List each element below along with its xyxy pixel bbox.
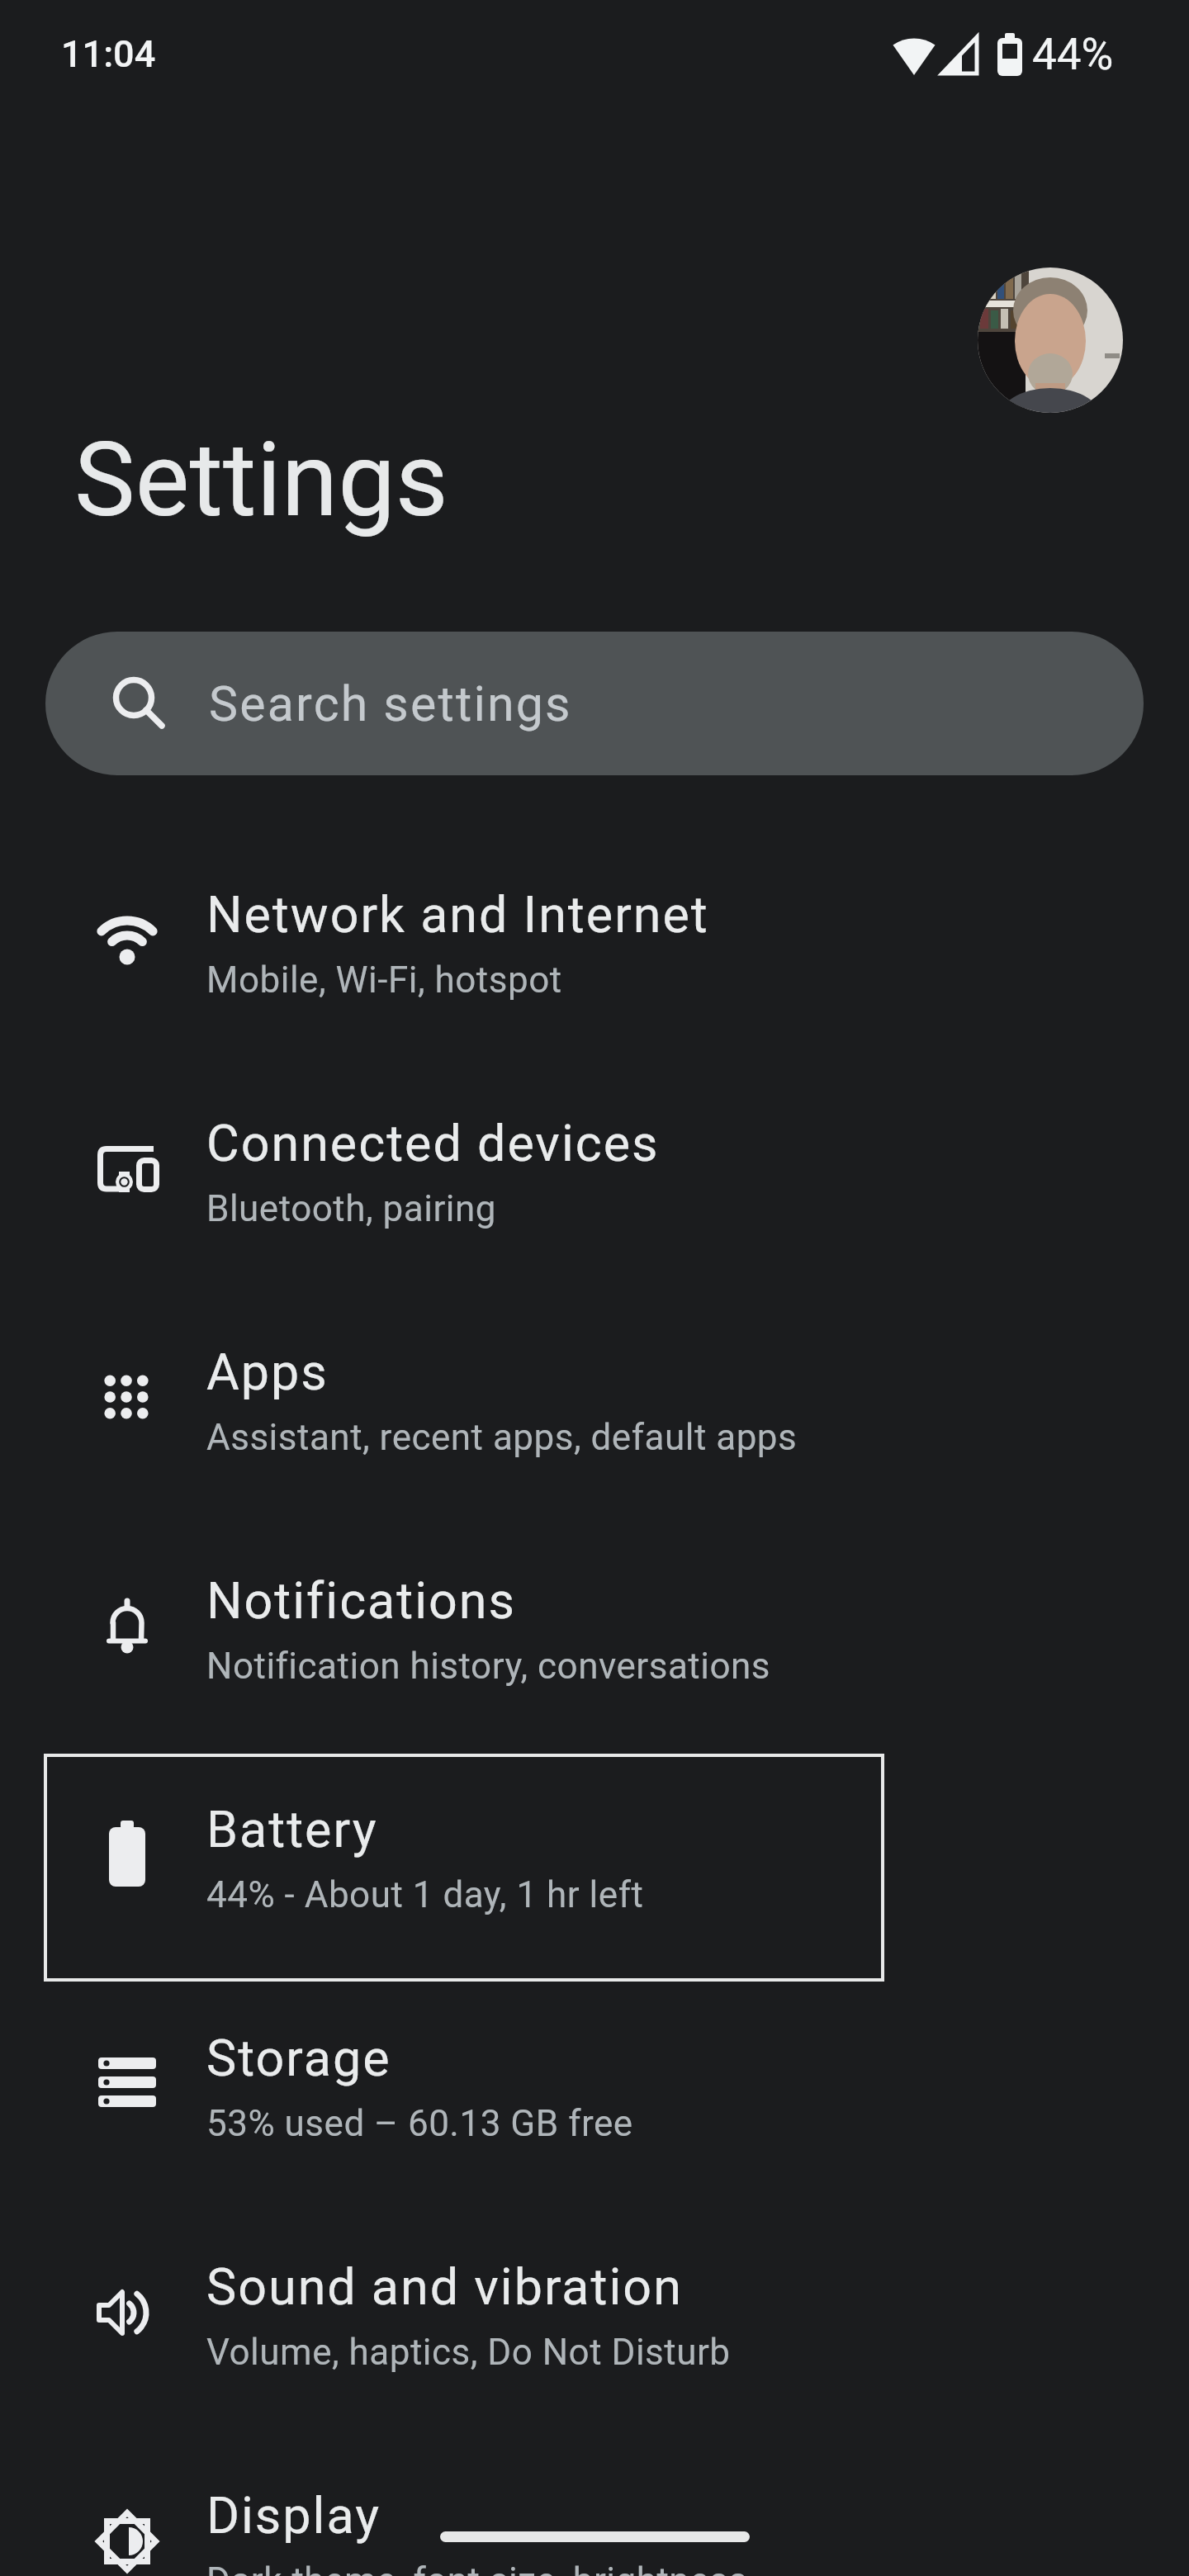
staticText: Search settings: [209, 675, 572, 732]
staticText: 44%: [1032, 29, 1114, 80]
button[interactable]: Search settings: [45, 632, 1144, 775]
button[interactable]: Storage: [0, 1969, 1189, 2198]
button[interactable]: Connected devices: [0, 1054, 1189, 1283]
button[interactable]: Display: [0, 2427, 1189, 2576]
staticText: Display: [206, 2486, 381, 2545]
staticText: Volume, haptics, Do Not Disturb: [206, 2331, 731, 2374]
button[interactable]: Apps: [0, 1283, 1189, 1512]
staticText: Connected devices: [206, 1114, 660, 1172]
staticText: Battery: [206, 1800, 378, 1859]
staticText: Mobile, Wi-Fi, hotspot: [206, 959, 562, 1002]
staticText: Apps: [206, 1342, 329, 1401]
staticText: 11:04: [61, 32, 156, 76]
staticText: Bluetooth, pairing: [206, 1187, 497, 1230]
staticText: Sound and vibration: [206, 2257, 683, 2316]
staticText: 53% used – 60.13 GB free: [206, 2102, 633, 2145]
staticText: Dark theme, font size, brightness: [206, 2559, 748, 2576]
staticText: Notification history, conversations: [206, 1645, 771, 1688]
button[interactable]: Network and Internet: [0, 826, 1189, 1054]
button[interactable]: [978, 268, 1123, 413]
button[interactable]: Sound and vibration: [0, 2198, 1189, 2427]
staticText: Notifications: [206, 1571, 516, 1630]
staticText: Assistant, recent apps, default apps: [206, 1416, 798, 1459]
button[interactable]: Notifications: [0, 1512, 1189, 1740]
staticText: Storage: [206, 2029, 391, 2087]
staticText: 44% - About 1 day, 1 hr left: [206, 1873, 644, 1916]
button[interactable]: Battery: [0, 1740, 1189, 1969]
staticText: Network and Internet: [206, 885, 709, 944]
staticText: Settings: [74, 420, 448, 540]
